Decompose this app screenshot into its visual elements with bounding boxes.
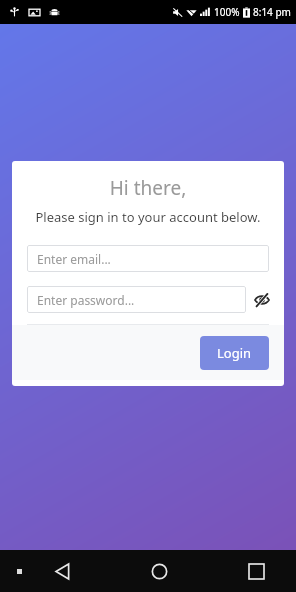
staticText: Enter password... [37, 292, 135, 308]
staticText: Login [217, 344, 252, 362]
button[interactable]: Show password [250, 288, 274, 312]
button[interactable]: Recent apps [234, 550, 278, 592]
staticText: 8:14 pm [253, 5, 291, 19]
button[interactable]: Back [40, 550, 84, 592]
staticText: Enter email... [37, 251, 111, 267]
button[interactable]: Home [137, 550, 181, 592]
button[interactable]: Login [200, 336, 269, 370]
staticText: Hi there, [12, 175, 284, 201]
button[interactable]: Enter password... [27, 286, 246, 313]
staticText: Please sign in to your account below. [12, 208, 284, 226]
button[interactable]: Enter email... [27, 245, 269, 272]
staticText: 100% [214, 5, 240, 19]
